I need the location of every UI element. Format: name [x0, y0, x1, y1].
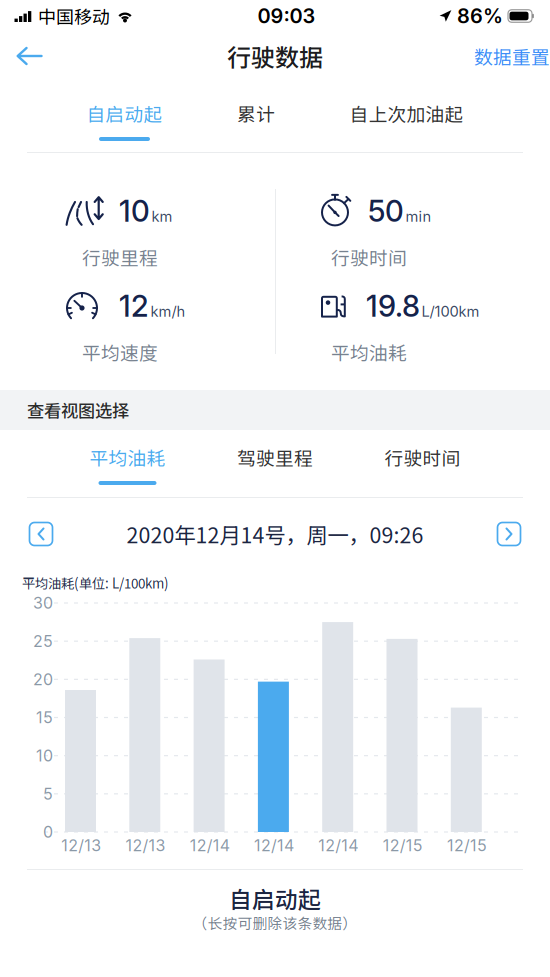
staticText: 平均速度: [82, 338, 158, 365]
staticText: 20: [33, 670, 53, 689]
staticText: 12/13: [61, 836, 101, 855]
staticText: 12/14: [318, 836, 358, 855]
button[interactable]: 上一天: [19, 512, 63, 556]
staticText: 累计: [237, 100, 275, 127]
staticText: 12: [119, 288, 149, 324]
staticText: 平均油耗(单位: L/100km): [22, 573, 169, 592]
staticText: min: [405, 208, 431, 225]
staticText: 自上次加油起: [349, 100, 463, 127]
staticText: 中国移动: [38, 3, 110, 29]
button[interactable]: 驾驶里程: [237, 444, 313, 485]
staticText: 数据重置: [474, 42, 550, 69]
staticText: km: [151, 208, 172, 225]
staticText: 0: [43, 822, 53, 842]
button[interactable]: 自启动起: [86, 100, 162, 141]
staticText: 86%: [457, 4, 503, 28]
staticText: 查看视图选择: [27, 397, 129, 423]
button[interactable]: 平均油耗: [89, 444, 165, 485]
button[interactable]: 下一天: [487, 512, 531, 556]
button[interactable]: 数据重置: [474, 32, 550, 80]
staticText: 自启动起: [86, 100, 162, 127]
staticText: 09:03: [257, 4, 315, 28]
staticText: L/100km: [421, 303, 479, 320]
staticText: 19.8: [366, 288, 420, 324]
staticText: 12/13: [125, 836, 165, 855]
staticText: 50: [368, 193, 404, 229]
staticText: 行驶里程: [82, 243, 158, 270]
staticText: km/h: [150, 303, 185, 320]
staticText: 10: [119, 193, 150, 229]
staticText: 25: [33, 631, 53, 651]
staticText: 30: [33, 593, 53, 613]
staticText: 自启动起: [229, 882, 321, 914]
staticText: 行驶时间: [331, 243, 407, 270]
staticText: 15: [36, 708, 53, 727]
button[interactable]: 自上次加油起: [349, 100, 463, 141]
staticText: 2020年12月14号，周一，09:26: [126, 519, 423, 549]
button[interactable]: 返回: [0, 32, 57, 80]
button[interactable]: 累计: [237, 100, 275, 141]
button[interactable]: 行驶时间: [384, 444, 460, 485]
staticText: 10: [36, 746, 53, 765]
staticText: 驾驶里程: [237, 444, 313, 471]
staticText: 12/14: [190, 836, 230, 855]
staticText: 12/14: [254, 836, 294, 855]
staticText: 12/15: [447, 836, 487, 855]
staticText: 行驶数据: [227, 39, 323, 73]
staticText: 平均油耗: [331, 338, 407, 365]
staticText: 12/15: [383, 836, 423, 855]
staticText: （长按可删除该条数据）: [192, 912, 357, 933]
staticText: 5: [43, 784, 53, 804]
staticText: 平均油耗: [89, 444, 165, 471]
staticText: 行驶时间: [384, 444, 460, 471]
